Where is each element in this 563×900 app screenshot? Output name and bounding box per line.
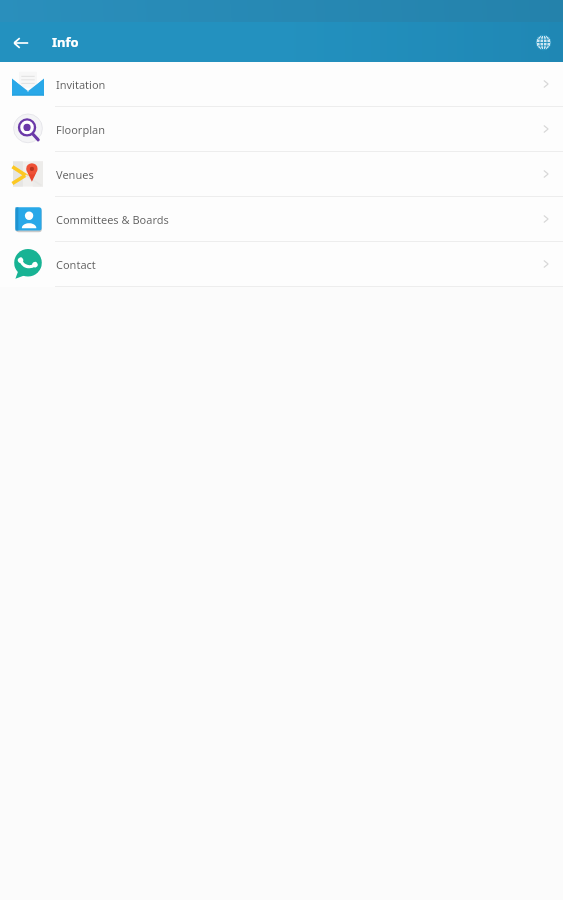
button[interactable]: Contact: [0, 242, 563, 286]
button[interactable]: Committees & Boards: [0, 197, 563, 241]
button[interactable]: Floorplan: [0, 107, 563, 151]
staticText: Invitation: [56, 77, 106, 92]
button[interactable]: Language: [529, 28, 557, 56]
staticText: Contact: [56, 257, 96, 272]
staticText: Floorplan: [56, 122, 105, 137]
staticText: Committees & Boards: [56, 212, 169, 227]
button[interactable]: Invitation: [0, 62, 563, 106]
button[interactable]: Venues: [0, 152, 563, 196]
staticText: Venues: [56, 167, 94, 182]
button[interactable]: Back: [7, 29, 34, 56]
staticText: Info: [52, 33, 79, 51]
